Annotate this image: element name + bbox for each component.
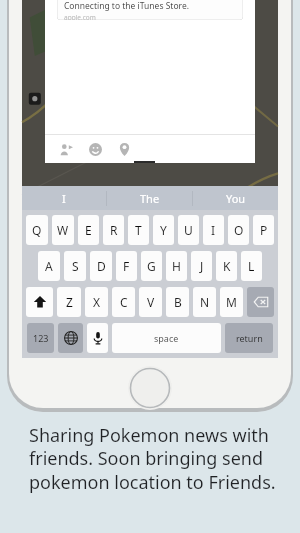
staticText: J	[200, 258, 204, 274]
staticText: G	[147, 258, 156, 274]
button[interactable]: N	[193, 287, 216, 317]
button[interactable]: Location	[114, 139, 134, 159]
staticText: T	[135, 222, 142, 238]
staticText: I	[211, 222, 216, 238]
staticText: A	[45, 258, 53, 274]
staticText: L	[248, 258, 255, 274]
staticText: W	[57, 222, 69, 238]
button[interactable]: W	[52, 215, 74, 245]
button[interactable]: L	[241, 251, 262, 281]
button[interactable]: R	[103, 215, 124, 245]
staticText: D	[97, 258, 106, 274]
button[interactable]: Connecting to the iTunes Store.	[57, 0, 243, 20]
button[interactable]: G	[141, 251, 162, 281]
button[interactable]: D	[90, 251, 112, 281]
button[interactable]: Feeling	[85, 139, 105, 159]
button[interactable]: P	[253, 215, 274, 245]
button[interactable]: I	[203, 215, 224, 245]
button[interactable]: return	[225, 323, 273, 353]
button[interactable]: E	[78, 215, 99, 245]
staticText: F	[123, 258, 130, 274]
staticText: apple.com	[64, 13, 96, 20]
button[interactable]: Home	[128, 366, 172, 410]
button[interactable]: T	[128, 215, 149, 245]
staticText: Sharing Pokemon news with friends. Soon …	[29, 423, 285, 495]
button[interactable]: space	[112, 323, 221, 353]
button[interactable]: Q	[26, 215, 48, 245]
button[interactable]: Z	[57, 287, 81, 317]
staticText: Connecting to the iTunes Store.	[64, 0, 189, 12]
staticText: C	[120, 294, 128, 310]
staticText: 123	[33, 332, 49, 344]
staticText: K	[223, 258, 231, 274]
button[interactable]: S	[64, 251, 86, 281]
staticText: I	[62, 191, 66, 206]
button[interactable]: Backspace	[247, 287, 274, 317]
button[interactable]: C	[112, 287, 135, 317]
staticText: Z	[66, 294, 73, 310]
staticText: Q	[32, 222, 42, 238]
button[interactable]: I	[22, 186, 106, 210]
staticText: space	[154, 332, 179, 344]
staticText: You	[226, 191, 246, 206]
button[interactable]: Tag people	[56, 139, 76, 159]
staticText: H	[172, 258, 181, 274]
button[interactable]: K	[216, 251, 237, 281]
staticText: return	[236, 332, 263, 344]
staticText: Y	[160, 222, 167, 238]
staticText: V	[147, 294, 155, 310]
button[interactable]: H	[166, 251, 187, 281]
staticText: S	[72, 258, 79, 274]
staticText: O	[234, 222, 244, 238]
button[interactable]: Y	[153, 215, 174, 245]
button[interactable]: 123	[27, 323, 54, 353]
button[interactable]: A	[38, 251, 60, 281]
button[interactable]: F	[116, 251, 137, 281]
button[interactable]: V	[139, 287, 162, 317]
button[interactable]: Dictation	[87, 323, 108, 353]
button[interactable]: The	[107, 186, 192, 210]
button[interactable]: M	[220, 287, 243, 317]
staticText: The	[140, 191, 160, 206]
staticText: N	[200, 294, 210, 310]
staticText: M	[226, 294, 237, 310]
button[interactable]: U	[178, 215, 199, 245]
button[interactable]: Switch keyboard	[58, 323, 83, 353]
button[interactable]: X	[85, 287, 108, 317]
button[interactable]: J	[191, 251, 212, 281]
staticText: X	[93, 294, 101, 310]
button[interactable]: You	[193, 186, 278, 210]
button[interactable]: Shift	[26, 287, 53, 317]
staticText: R	[110, 222, 118, 238]
staticText: E	[85, 222, 92, 238]
staticText: P	[260, 222, 268, 238]
staticText: U	[184, 222, 193, 238]
button[interactable]: O	[228, 215, 249, 245]
button[interactable]: B	[166, 287, 189, 317]
staticText: B	[174, 294, 182, 310]
